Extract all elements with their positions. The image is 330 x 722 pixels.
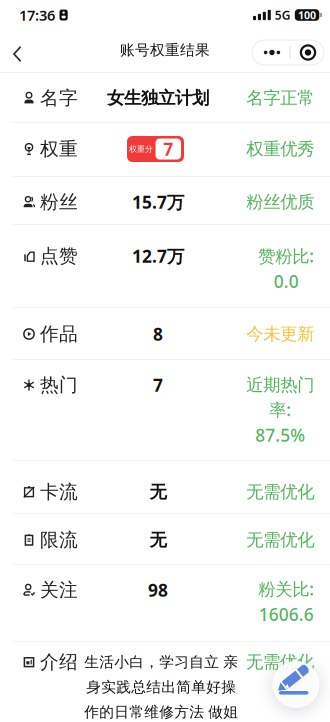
- staticText: 100: [298, 8, 316, 22]
- staticText: 15.7万: [132, 190, 184, 213]
- staticText: 无需优化: [246, 481, 314, 503]
- staticText: 关注: [40, 578, 78, 601]
- staticText: 权重优秀: [246, 138, 314, 160]
- staticText: 今未更新: [246, 323, 314, 345]
- staticText: 无需优化: [246, 529, 314, 551]
- button[interactable]: 关闭: [290, 40, 325, 65]
- staticText: 无需优化: [246, 651, 314, 673]
- staticText: 5G: [275, 7, 291, 23]
- staticText: 7: [153, 373, 163, 396]
- staticText: 作品: [40, 322, 78, 345]
- staticText: 无: [149, 529, 166, 551]
- staticText: 热门: [40, 373, 78, 396]
- staticText: 权重分: [129, 144, 153, 154]
- staticText: 8: [153, 322, 163, 345]
- button[interactable]: 编辑: [272, 661, 319, 708]
- staticText: 权重: [40, 137, 78, 160]
- staticText: 卡流: [40, 480, 78, 503]
- staticText: 名字正常: [246, 87, 314, 109]
- button[interactable]: 返回: [0, 32, 22, 74]
- staticText: 粉丝: [40, 190, 78, 213]
- staticText: 12.7万: [132, 244, 184, 267]
- staticText: 女生独立计划: [107, 87, 209, 109]
- staticText: 17:36: [19, 5, 55, 25]
- button[interactable]: 更多: [253, 40, 290, 65]
- staticText: 限流: [40, 528, 78, 551]
- staticText: 98: [148, 578, 168, 601]
- staticText: 账号权重结果: [120, 41, 210, 59]
- staticText: 点赞: [40, 244, 78, 267]
- staticText: 生活小白，学习自立 亲 身实践总结出简单好操 作的日常维修方法 做姐 妹们一起学…: [84, 653, 238, 722]
- staticText: 名字: [40, 86, 78, 109]
- staticText: 粉丝优质: [246, 191, 314, 213]
- staticText: 粉关比: 1606.6: [258, 577, 314, 626]
- staticText: 介绍: [40, 650, 78, 673]
- staticText: 赞粉比: 0.0: [258, 244, 314, 293]
- staticText: 无: [149, 481, 166, 503]
- staticText: 7: [163, 137, 173, 160]
- staticText: 近期热门 率: 87.5%: [246, 374, 314, 446]
